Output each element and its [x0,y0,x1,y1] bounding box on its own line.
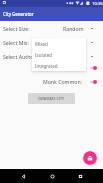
staticText: 10:35 [92,1,103,7]
staticText: GENERATE CITY [38,96,65,101]
button[interactable]: Magic Common: [0,61,103,74]
button[interactable]: Mixed [32,38,86,49]
button[interactable]: Select Size: [0,21,103,35]
staticText: Select Mix: [3,39,29,46]
button[interactable]: Back [17,169,29,183]
staticText: Magic Common: [43,64,83,71]
staticText: Select Authority: [3,53,43,60]
staticText: Random [63,25,84,32]
staticText: Mixed [35,41,48,47]
button[interactable]: Select Mix: [0,35,103,49]
staticText: Select Size: [3,25,30,32]
button[interactable]: Home [46,169,58,183]
staticText: Integrated [35,63,58,69]
button[interactable]: Recent apps [74,169,86,183]
button[interactable]: Monk Common: [0,75,103,88]
button[interactable]: GENERATE CITY [28,93,75,104]
staticText: Isolated [35,52,53,58]
staticText: City Generator [3,11,34,17]
button[interactable]: Save city [83,151,97,165]
button[interactable]: Integrated [32,60,86,71]
staticText: Monk Common: [43,78,83,85]
button[interactable]: Isolated [32,49,86,60]
button[interactable]: Select Authority: [0,49,103,63]
